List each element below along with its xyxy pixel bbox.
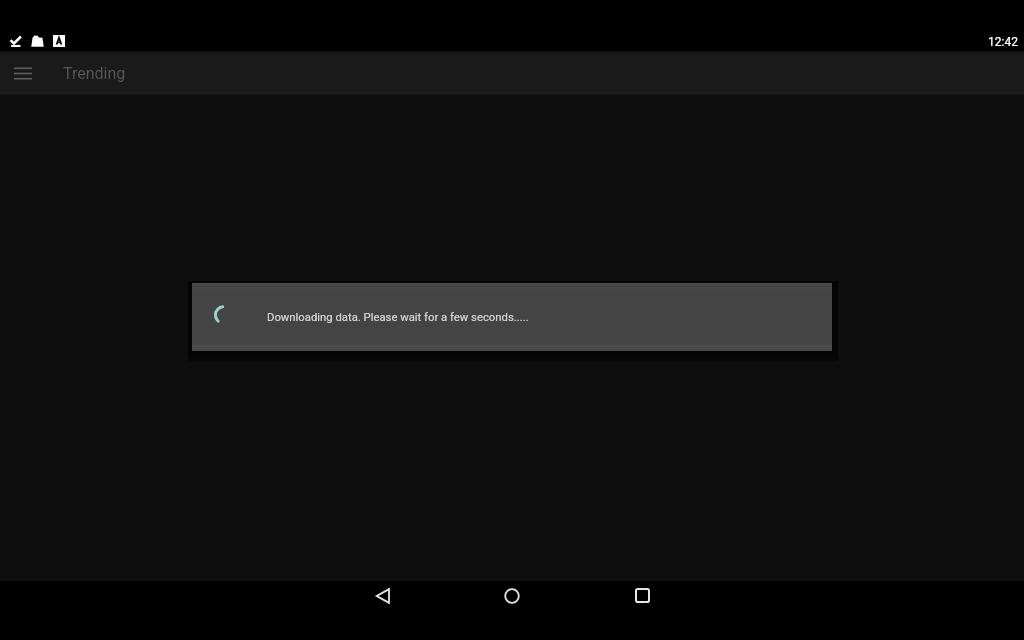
staticText: 12:42 (988, 35, 1018, 49)
button[interactable]: Open navigation drawer (0, 51, 46, 96)
button[interactable]: Back (350, 581, 414, 640)
staticText: Downloading data. Please wait for a few … (267, 311, 529, 324)
button[interactable]: Recent apps (610, 581, 674, 640)
staticText: Trending (63, 64, 126, 83)
button[interactable]: Home (480, 581, 544, 640)
